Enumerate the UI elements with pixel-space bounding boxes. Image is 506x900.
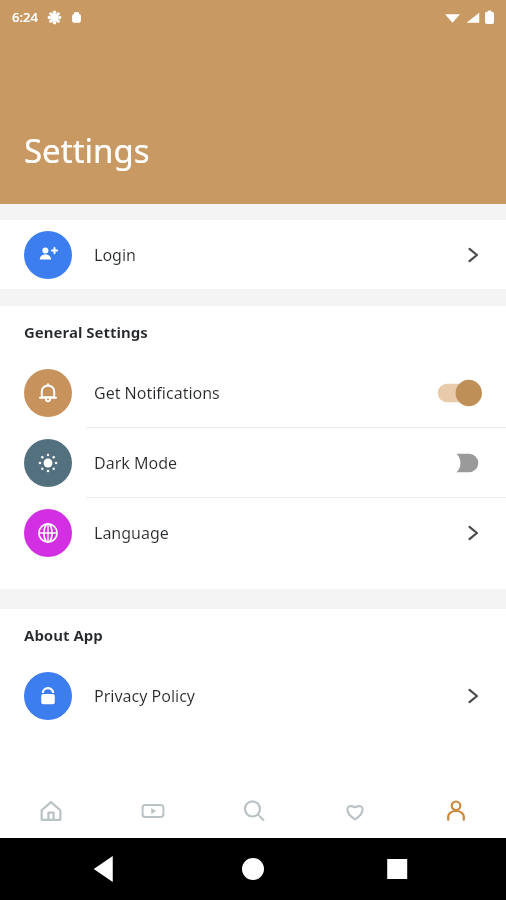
button[interactable]: Toggle on [432, 378, 484, 408]
button[interactable]: Get Notifications [0, 358, 506, 427]
staticText: Get Notifications [94, 382, 432, 404]
button[interactable]: Profile [405, 784, 506, 838]
staticText: 6:24 [12, 8, 38, 26]
button[interactable]: Videos [102, 784, 203, 838]
staticText: Dark Mode [94, 452, 432, 474]
staticText: Language [94, 522, 462, 544]
staticText: Settings [24, 128, 150, 173]
button[interactable]: Search [203, 784, 304, 838]
button[interactable]: Favorites [304, 784, 405, 838]
button[interactable]: Privacy Policy [0, 661, 506, 730]
staticText: Privacy Policy [94, 685, 462, 707]
button[interactable]: Login [0, 220, 506, 289]
staticText: Login [94, 244, 462, 266]
button[interactable]: Dark Mode [0, 428, 506, 497]
button[interactable]: Home [0, 784, 102, 838]
button[interactable]: Toggle off [432, 448, 484, 478]
button[interactable]: Language [0, 498, 506, 567]
staticText: General Settings [24, 322, 148, 342]
staticText: About App [24, 625, 103, 645]
